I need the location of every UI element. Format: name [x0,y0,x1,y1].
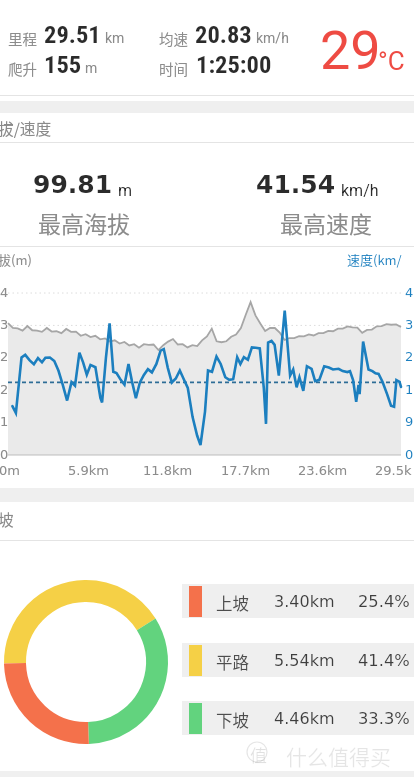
other: 坡度分布图 [4,580,168,744]
staticText: 最高速度 [280,206,372,239]
staticText: 爬升 [8,58,37,79]
staticText: 29 [320,19,381,82]
staticText: 速度(km/ [347,250,402,269]
staticText: 29.51 [44,20,101,49]
staticText: 里程 [8,28,37,49]
staticText: 33.3% [358,709,410,728]
staticText: 11.8km [143,463,193,478]
staticText: km [105,30,125,46]
staticText: 2 [0,382,9,397]
staticText: 最高海拔 [38,206,130,239]
staticText: 20.83 [195,20,252,49]
staticText: km/h [341,181,379,200]
staticText: 拔(m) [0,250,32,269]
staticText: 0 [0,447,9,462]
staticText: 1 [405,382,414,397]
staticText: 上坡 [216,591,249,615]
staticText: 5.9km [68,463,109,478]
staticText: 3 [405,317,414,332]
staticText: 9 [405,414,414,429]
staticText: °C [378,46,405,76]
staticText: 坡 [0,508,14,531]
staticText: 4 [0,285,9,300]
staticText: 拔/速度 [0,117,52,140]
staticText: 时间 [159,58,188,79]
staticText: 29.5k [375,463,412,478]
staticText: 41.4% [358,651,410,670]
staticText: 4.46km [274,709,335,728]
staticText: 2 [405,349,414,364]
staticText: 3 [0,317,9,332]
staticText: 1:25:00 [196,50,272,79]
staticText: 5.54km [274,651,335,670]
staticText: 41.54 [256,170,336,199]
staticText: 均速 [159,28,188,49]
staticText: m [118,181,133,200]
staticText: 平路 [216,650,249,674]
button[interactable] [182,584,414,618]
staticText: km/h [256,30,289,46]
staticText: 值 [250,742,267,767]
button[interactable] [182,701,414,735]
staticText: 23.6km [298,463,348,478]
staticText: m [85,60,98,76]
staticText: 25.4% [358,592,410,611]
staticText: 4 [405,285,414,300]
staticText: 2 [0,349,9,364]
staticText: 17.7km [221,463,271,478]
staticText: 什么值得买 [286,741,391,771]
staticText: 3.40km [274,592,335,611]
button[interactable] [182,643,414,677]
staticText: 1 [0,414,9,429]
staticText: 0m [0,463,20,478]
staticText: 99.81 [33,170,113,199]
staticText: 下坡 [216,708,249,732]
staticText: 0 [405,447,414,462]
staticText: 155 [44,50,82,79]
